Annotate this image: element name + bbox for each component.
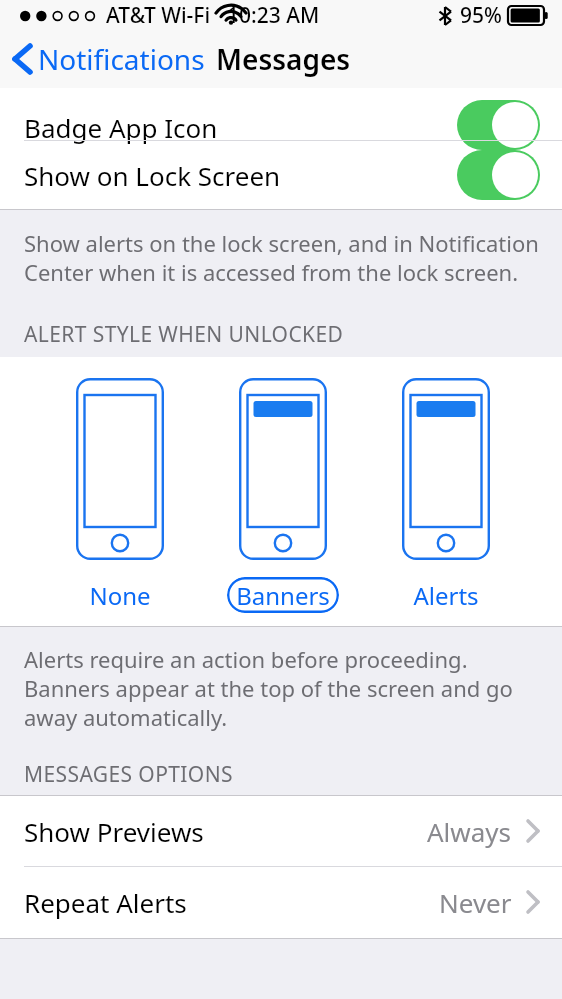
- staticText: Notifications: [38, 40, 205, 78]
- button[interactable]: Show Previews: [0, 796, 562, 866]
- button[interactable]: Show on Lock Screen: [0, 141, 562, 209]
- button[interactable]: Banners: [203, 357, 363, 613]
- button[interactable]: Notifications: [0, 34, 215, 84]
- button[interactable]: Toggle: [457, 150, 540, 200]
- button[interactable]: Repeat Alerts: [0, 867, 562, 937]
- staticText: Repeat Alerts: [24, 885, 439, 920]
- staticText: Never: [439, 885, 512, 920]
- staticText: Always: [427, 814, 512, 849]
- staticText: ALERT STYLE WHEN UNLOCKED: [24, 320, 344, 349]
- button[interactable]: None: [40, 357, 200, 613]
- button[interactable]: Alerts: [366, 357, 526, 613]
- staticText: Messages: [216, 40, 351, 78]
- staticText: Alerts: [413, 579, 479, 612]
- staticText: Show alerts on the lock screen, and in N…: [24, 228, 539, 287]
- staticText: Badge App Icon: [24, 110, 218, 145]
- staticText: MESSAGES OPTIONS: [24, 760, 233, 789]
- button[interactable]: Toggle: [457, 100, 540, 150]
- staticText: 95%: [460, 1, 502, 30]
- staticText: 10:23 AM: [227, 1, 320, 30]
- staticText: AT&T Wi-Fi: [106, 1, 211, 30]
- staticText: Show Previews: [24, 814, 427, 849]
- staticText: None: [89, 579, 151, 612]
- staticText: Banners: [236, 579, 330, 612]
- button[interactable]: Badge App Icon: [0, 88, 562, 140]
- staticText: Alerts require an action before proceedi…: [24, 644, 513, 732]
- staticText: Show on Lock Screen: [24, 158, 457, 193]
